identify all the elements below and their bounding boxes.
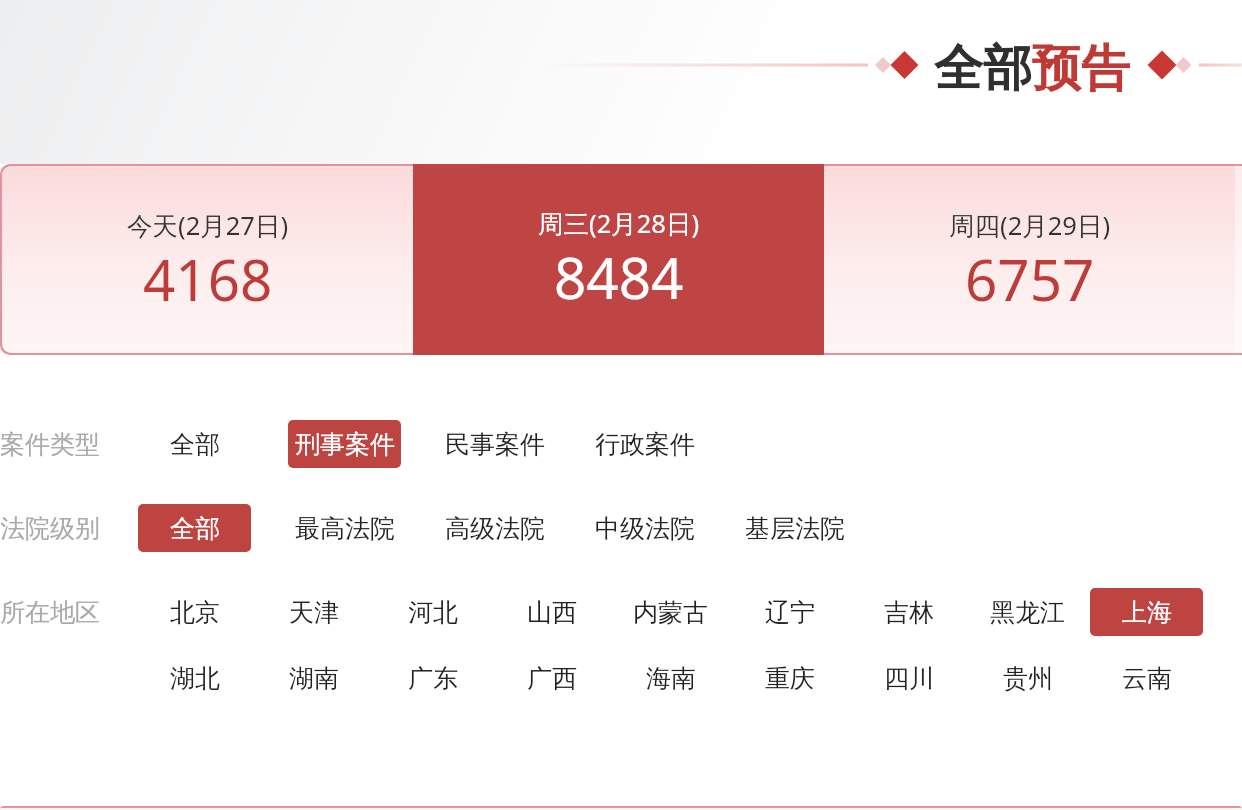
button[interactable]: 广东 <box>376 654 489 702</box>
staticText: 吉林 <box>884 597 934 628</box>
button[interactable]: 山西 <box>495 588 608 636</box>
staticText: 6757 <box>965 241 1095 318</box>
button[interactable]: 周三(2月28日) <box>413 164 824 355</box>
staticText: 内蒙古 <box>633 597 708 628</box>
staticText: 海南 <box>646 663 696 694</box>
staticText: 上海 <box>1122 597 1172 628</box>
staticText: 4168 <box>143 241 273 318</box>
button[interactable]: 黑龙江 <box>971 588 1084 636</box>
staticText: 广西 <box>527 663 577 694</box>
staticText: 四川 <box>884 663 934 694</box>
button[interactable]: 民事案件 <box>438 420 551 468</box>
button[interactable]: 基层法院 <box>738 504 851 552</box>
button[interactable]: 广西 <box>495 654 608 702</box>
button[interactable]: 刑事案件 <box>288 420 401 468</box>
staticText: 云南 <box>1122 663 1172 694</box>
staticText: 河北 <box>408 597 458 628</box>
button[interactable]: 内蒙古 <box>614 588 727 636</box>
button[interactable]: 周四(2月29日) <box>824 166 1235 353</box>
button[interactable]: 全部 <box>138 420 251 468</box>
staticText: 周四(2月29日) <box>949 208 1111 243</box>
staticText: 全部预告 <box>934 38 1130 100</box>
staticText: 重庆 <box>765 663 815 694</box>
staticText: 中级法院 <box>595 513 695 544</box>
staticText: 所在地区 <box>0 597 100 628</box>
staticText: 湖北 <box>170 663 220 694</box>
staticText: 行政案件 <box>595 429 695 460</box>
button[interactable]: 中级法院 <box>588 504 701 552</box>
staticText: 基层法院 <box>745 513 845 544</box>
staticText: 全部 <box>170 429 220 460</box>
staticText: 案件类型 <box>0 429 100 460</box>
button[interactable]: 湖南 <box>257 654 370 702</box>
button[interactable]: 最高法院 <box>288 504 401 552</box>
button[interactable]: 行政案件 <box>588 420 701 468</box>
button[interactable]: 上海 <box>1090 588 1203 636</box>
button[interactable]: 天津 <box>257 588 370 636</box>
staticText: 民事案件 <box>445 429 545 460</box>
button[interactable]: 云南 <box>1090 654 1203 702</box>
button[interactable]: 海南 <box>614 654 727 702</box>
button[interactable]: 吉林 <box>852 588 965 636</box>
staticText: 广东 <box>408 663 458 694</box>
staticText: 高级法院 <box>445 513 545 544</box>
staticText: 全部 <box>170 513 220 544</box>
button[interactable]: 全部 <box>138 504 251 552</box>
button[interactable]: 四川 <box>852 654 965 702</box>
staticText: 最高法院 <box>295 513 395 544</box>
button[interactable]: 湖北 <box>138 654 251 702</box>
staticText: 天津 <box>289 597 339 628</box>
button[interactable]: 今天(2月27日) <box>2 166 413 353</box>
button[interactable]: 重庆 <box>733 654 846 702</box>
staticText: 黑龙江 <box>990 597 1065 628</box>
staticText: 周三(2月28日) <box>538 206 700 241</box>
staticText: 法院级别 <box>0 513 100 544</box>
staticText: 辽宁 <box>765 597 815 628</box>
staticText: 北京 <box>170 597 220 628</box>
button[interactable]: 辽宁 <box>733 588 846 636</box>
staticText: 今天(2月27日) <box>127 208 289 243</box>
button[interactable]: 贵州 <box>971 654 1084 702</box>
staticText: 山西 <box>527 597 577 628</box>
button[interactable]: 北京 <box>138 588 251 636</box>
staticText: 湖南 <box>289 663 339 694</box>
staticText: 贵州 <box>1003 663 1053 694</box>
staticText: 8484 <box>554 239 684 316</box>
staticText: 刑事案件 <box>295 429 395 460</box>
button[interactable]: 高级法院 <box>438 504 551 552</box>
button[interactable]: 河北 <box>376 588 489 636</box>
